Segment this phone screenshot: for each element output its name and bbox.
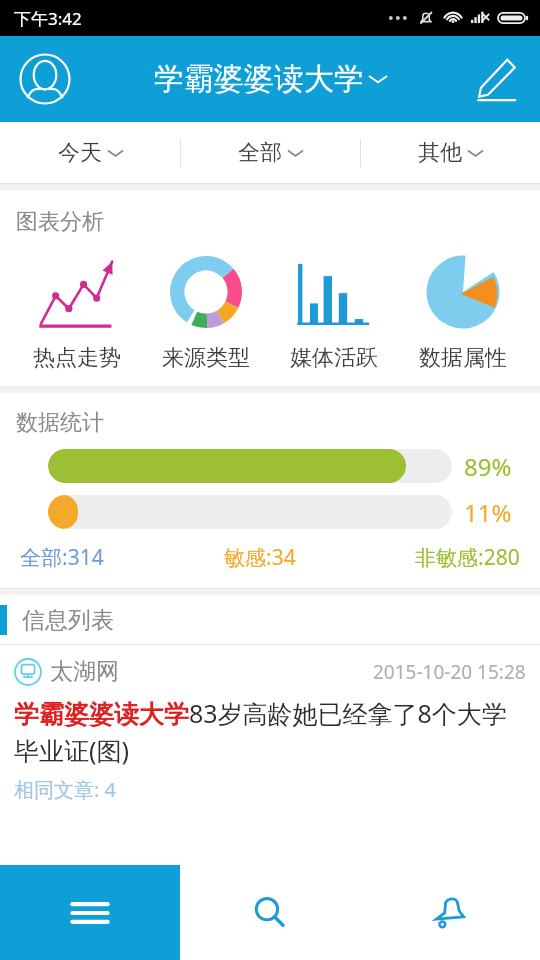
staticText: 图表分析 [16,208,104,236]
staticText: 媒体活跃 [290,344,378,372]
staticText: 学霸婆婆读大学 [154,60,364,98]
button[interactable]: 太湖网 [0,645,540,813]
button[interactable]: 敏感:34 [224,543,296,572]
button[interactable]: 非敏感:280 [415,543,520,572]
staticText: 数据属性 [419,344,507,372]
button[interactable]: 数据属性 [411,246,515,372]
button[interactable]: 媒体活跃 [282,246,386,372]
button[interactable]: Search [180,865,360,960]
button[interactable]: 今天 [0,122,180,184]
button[interactable]: 全部:314 [20,543,104,572]
button[interactable]: 热点走势 [25,246,129,372]
button[interactable]: Compose [468,52,522,106]
staticText: 热点走势 [33,344,121,372]
staticText: 11% [464,496,512,529]
button[interactable]: Profile [14,48,76,110]
staticText: 数据统计 [16,409,104,437]
staticText: 下午3:42 [14,7,82,30]
staticText: 89% [464,450,512,483]
staticText: 全部 [238,139,282,167]
button[interactable]: 来源类型 [154,246,258,372]
button[interactable]: 学霸婆婆读大学 [146,54,395,104]
staticText: 今天 [58,139,102,167]
button[interactable]: Notifications [360,865,540,960]
staticText: 信息列表 [22,606,114,635]
button[interactable]: 其他 [361,122,540,184]
staticText: 2015-10-20 15:28 [373,659,526,685]
staticText: 相同文章: 4 [14,776,116,803]
staticText: 太湖网 [50,657,119,686]
button[interactable]: Menu [0,865,180,960]
staticText: 来源类型 [162,344,250,372]
staticText: 其他 [418,139,462,167]
button[interactable]: 全部 [181,122,360,184]
staticText: 学霸婆婆读大学83岁高龄她已经拿了8个大学毕业证(图) [14,696,526,768]
